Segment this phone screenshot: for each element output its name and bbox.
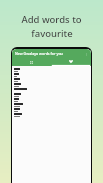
button[interactable]: Favourites <box>51 58 91 66</box>
button[interactable]: More options <box>83 51 89 57</box>
staticText: favourite <box>31 27 73 40</box>
button[interactable]: All words <box>12 58 51 66</box>
staticText: New Gwalaya words for you <box>15 51 63 56</box>
staticText: Add words to <box>21 13 82 26</box>
